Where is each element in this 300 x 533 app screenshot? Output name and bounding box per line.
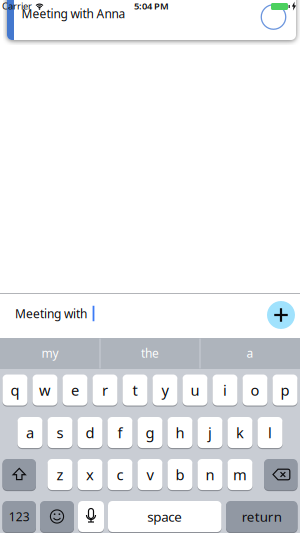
button[interactable]: u [182,374,207,405]
button[interactable]: my [1,337,99,368]
staticText: l [268,423,272,442]
button[interactable]: l [257,417,282,448]
staticText: a [246,345,253,361]
staticText: u [190,380,199,400]
staticText: b [175,465,184,484]
button[interactable]: Delete [264,459,297,490]
staticText: return [242,508,282,525]
staticText: j [208,423,212,442]
button[interactable]: y [152,374,177,405]
button[interactable]: f [107,417,132,448]
button[interactable]: 123 [2,501,36,532]
staticText: p [280,380,289,400]
staticText: 5:04 PM [134,0,169,12]
staticText: m [233,465,247,484]
button[interactable]: q [2,374,27,405]
staticText: g [145,423,154,442]
button[interactable]: m [227,459,252,490]
button[interactable]: j [197,417,222,448]
staticText: s [56,423,63,442]
button[interactable]: d [77,417,102,448]
button[interactable]: s [47,417,72,448]
staticText: my [41,345,58,361]
staticText: v [146,465,153,484]
staticText: f [117,423,122,442]
staticText: a [26,423,34,442]
staticText: e [71,380,79,400]
staticText: Carrier [2,0,32,12]
staticText: z [56,465,63,484]
button[interactable]: Mark complete [261,5,286,29]
button[interactable]: g [137,417,162,448]
button[interactable] [7,0,296,40]
button[interactable]: w [32,374,57,405]
button[interactable]: Emoji [40,501,74,532]
button[interactable]: return [226,501,297,532]
button[interactable]: a [201,337,299,368]
staticText: n [205,465,214,484]
staticText: y [161,380,168,400]
staticText: 123 [9,508,30,524]
button[interactable]: b [167,459,192,490]
button[interactable]: Add [267,301,295,329]
button[interactable]: Dictate [78,501,104,532]
button[interactable]: r [92,374,117,405]
staticText: space [147,508,182,525]
staticText: o [250,380,259,400]
button[interactable]: c [107,459,132,490]
staticText: r [102,380,108,400]
button[interactable]: space [108,501,221,532]
staticText: the [141,345,159,361]
button[interactable]: v [137,459,162,490]
button[interactable]: e [62,374,87,405]
staticText: t [132,380,137,400]
staticText: k [236,423,244,442]
staticText: w [39,380,51,400]
button[interactable]: h [167,417,192,448]
button[interactable]: i [212,374,237,405]
button[interactable]: o [242,374,267,405]
staticText: i [223,380,227,400]
button[interactable]: a [17,417,42,448]
button[interactable]: x [77,459,102,490]
button[interactable]: k [227,417,252,448]
button[interactable]: Shift [2,459,36,490]
button[interactable]: p [272,374,297,405]
staticText: Meeting with [15,305,90,321]
button[interactable]: z [47,459,72,490]
staticText: Meeting with Anna [21,5,125,21]
staticText: q [10,380,19,400]
staticText: c [116,465,123,484]
staticText: d [85,423,94,442]
button[interactable]: n [197,459,222,490]
staticText: x [86,465,94,484]
button[interactable]: t [122,374,147,405]
staticText: h [175,423,184,442]
button[interactable]: the [101,337,199,368]
